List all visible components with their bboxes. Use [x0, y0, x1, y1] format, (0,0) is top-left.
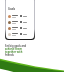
staticText: together with: [5, 50, 23, 53]
button[interactable]: [8, 13, 32, 19]
button[interactable]: [8, 25, 32, 31]
staticText: achieve them: [5, 47, 22, 50]
staticText: friends: [5, 53, 14, 56]
staticText: Goals: [8, 7, 16, 11]
button[interactable]: [8, 31, 32, 37]
button[interactable]: [8, 19, 32, 25]
staticText: Set big goals and: [5, 44, 27, 47]
